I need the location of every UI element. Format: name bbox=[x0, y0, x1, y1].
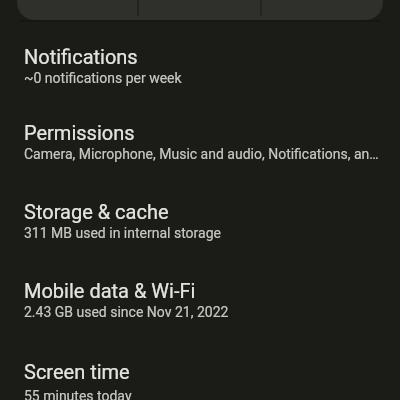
staticText: Notifications bbox=[24, 45, 138, 68]
button[interactable]: Mobile data & Wi-Fi bbox=[0, 279, 400, 320]
button[interactable]: Permissions bbox=[0, 121, 400, 162]
staticText: ~0 notifications per week bbox=[24, 70, 182, 86]
staticText: 311 MB used in internal storage bbox=[24, 225, 221, 241]
staticText: Screen time bbox=[24, 360, 130, 383]
staticText: Mobile data & Wi-Fi bbox=[24, 279, 196, 302]
staticText: Camera, Microphone, Music and audio, Not… bbox=[24, 146, 384, 162]
button[interactable] bbox=[261, 0, 383, 20]
staticText: 2.43 GB used since Nov 21, 2022 bbox=[24, 304, 229, 320]
button[interactable]: Screen time bbox=[0, 360, 400, 400]
staticText: 55 minutes today bbox=[24, 388, 132, 400]
button[interactable] bbox=[17, 0, 139, 20]
button[interactable]: Storage & cache bbox=[0, 200, 400, 241]
staticText: Storage & cache bbox=[24, 200, 169, 223]
staticText: Permissions bbox=[24, 121, 135, 144]
button[interactable]: Notifications bbox=[0, 45, 400, 86]
